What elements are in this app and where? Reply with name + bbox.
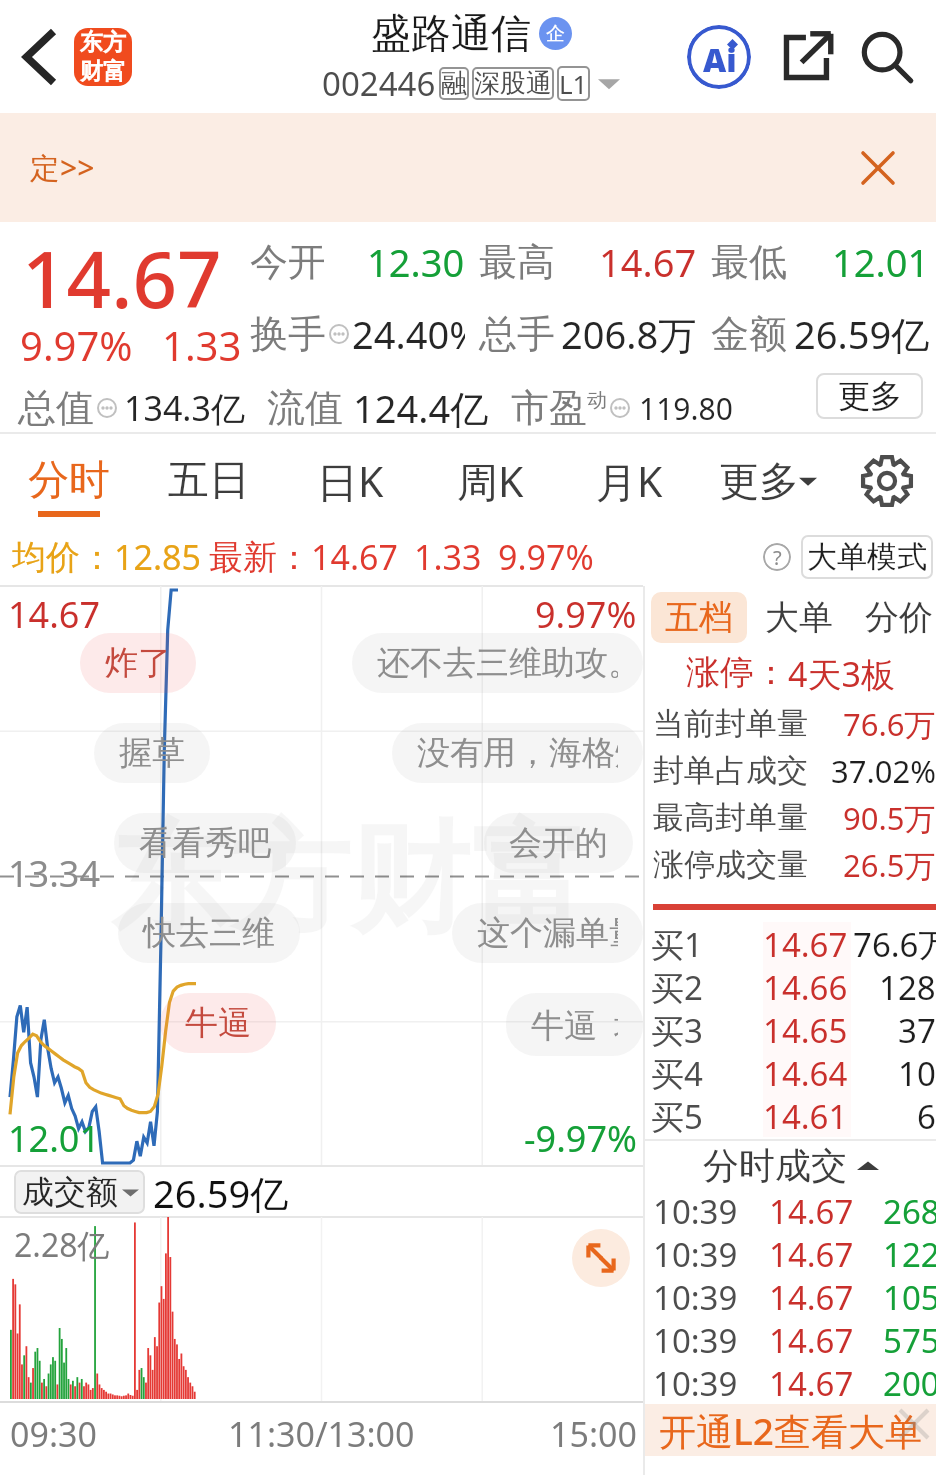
button[interactable]: 月K — [560, 434, 698, 527]
staticText: 定>> — [30, 147, 95, 188]
button[interactable]: Share — [772, 22, 842, 92]
button[interactable]: 10:39 — [645, 1318, 936, 1361]
button[interactable]: 10:39 — [645, 1189, 936, 1232]
button[interactable]: 买2 — [645, 965, 936, 1008]
button[interactable]: 开通L2查看大单 — [645, 1404, 936, 1456]
button[interactable]: 大单模式 — [801, 535, 933, 579]
staticText: 牛逼 地产 — [531, 1002, 618, 1047]
staticText: 买2 — [651, 965, 703, 1008]
staticText: 12.01 — [832, 236, 930, 288]
staticText: 124.4亿 — [353, 382, 489, 434]
staticText: 206.8万 — [561, 308, 697, 360]
button[interactable]: 买1 — [645, 922, 936, 965]
staticText: 14.67 — [769, 1361, 854, 1404]
staticText: 牛逼 — [185, 1002, 251, 1044]
staticText: 融 — [441, 67, 467, 100]
staticText: 14.67 — [769, 1232, 854, 1275]
staticText: 10:39 — [653, 1232, 738, 1275]
staticText: 总手 — [479, 310, 555, 358]
staticText: 575 — [883, 1318, 936, 1361]
button[interactable]: Fullscreen chart — [572, 1229, 630, 1287]
staticText: 6 — [917, 1094, 936, 1137]
staticText: 90.5万 — [843, 797, 936, 839]
button[interactable]: 周K — [420, 434, 560, 527]
staticText: 看看秀吧 — [139, 822, 271, 864]
staticText: 14.67 — [769, 1275, 854, 1318]
button[interactable]: Back — [6, 25, 70, 89]
staticText: 12.01 — [8, 1114, 101, 1163]
staticText: 14.67 — [769, 1189, 854, 1232]
staticText: 9.97% — [20, 318, 133, 372]
button[interactable]: Search — [852, 22, 922, 92]
button[interactable]: 分时 — [0, 434, 138, 527]
staticText: 会开的 — [509, 822, 608, 864]
staticText: 105 — [883, 1275, 936, 1318]
staticText: 76.6万 — [843, 703, 936, 745]
staticText: 今开 — [250, 238, 326, 286]
button[interactable]: Chart settings — [838, 434, 936, 527]
staticText: 14.67 — [763, 922, 848, 965]
staticText: 还不去三维助攻。在 — [377, 642, 618, 684]
staticText: 10 — [898, 1051, 936, 1094]
staticText: 封单占成交 — [653, 751, 808, 790]
staticText: 12.30 — [367, 236, 465, 288]
button[interactable]: East Money — [74, 28, 132, 86]
staticText: Ai — [703, 38, 737, 82]
staticText: 134.3亿 — [124, 385, 245, 431]
staticText: 大单 — [765, 596, 833, 639]
button[interactable]: 分价 — [861, 592, 936, 643]
staticText: 五档 — [665, 596, 733, 639]
staticText: 炸了 — [105, 642, 171, 684]
button[interactable]: Dismiss — [896, 1406, 932, 1442]
staticText: 26.5万 — [843, 844, 936, 886]
staticText: 分时成交 — [703, 1143, 847, 1188]
staticText: 37 — [898, 1008, 936, 1051]
staticText: 买3 — [651, 1008, 703, 1051]
staticText: 买4 — [651, 1051, 703, 1094]
button[interactable]: 更多 — [698, 434, 838, 527]
staticText: 09:30 — [10, 1411, 97, 1457]
staticText: 分价 — [865, 596, 932, 639]
button[interactable]: 更多 — [816, 373, 923, 419]
staticText: 76.6万 — [853, 922, 936, 965]
staticText: 五日 — [168, 455, 250, 507]
staticText: 13.34 — [8, 849, 101, 898]
staticText: 9.97% — [498, 534, 594, 580]
button[interactable]: 五日 — [138, 434, 280, 527]
button[interactable]: 日K — [280, 434, 420, 527]
staticText: L1 — [559, 66, 588, 101]
button[interactable]: 五档 — [651, 592, 747, 643]
staticText: 1.33 — [414, 534, 482, 580]
button[interactable]: 涨停： — [686, 651, 895, 697]
button[interactable]: 买5 — [645, 1094, 936, 1137]
staticText: 119.80 — [639, 388, 733, 429]
button[interactable]: 10:39 — [645, 1361, 936, 1404]
staticText: 月K — [596, 453, 663, 509]
staticText: 10:39 — [653, 1275, 738, 1318]
staticText: 最高封单量 — [653, 798, 808, 837]
staticText: 东方 — [80, 28, 126, 57]
staticText: 均价： — [12, 536, 114, 579]
staticText: 市盈 — [511, 384, 587, 432]
button[interactable]: 大单 — [761, 592, 837, 643]
staticText: 200 — [883, 1361, 936, 1404]
staticText: 10:39 — [653, 1361, 738, 1404]
staticText: 更多 — [838, 376, 902, 416]
button[interactable]: AI assistant — [680, 18, 758, 96]
button[interactable]: 10:39 — [645, 1275, 936, 1318]
staticText: 大单模式 — [807, 538, 927, 576]
staticText: 金额 — [711, 310, 787, 358]
staticText: 14.64 — [763, 1051, 848, 1094]
button[interactable]: 买4 — [645, 1051, 936, 1094]
staticText: 开通L2查看大单 — [659, 1405, 922, 1456]
button[interactable]: 成交额 — [14, 1170, 145, 1214]
button[interactable]: 分时成交 — [703, 1143, 879, 1188]
staticText: 买1 — [651, 922, 703, 965]
button[interactable]: 买3 — [645, 1008, 936, 1051]
button[interactable]: Close banner — [846, 136, 910, 200]
button[interactable]: Help — [763, 543, 791, 571]
staticText: 10:39 — [653, 1189, 738, 1232]
button[interactable]: 10:39 — [645, 1232, 936, 1275]
staticText: ? — [773, 544, 782, 571]
staticText: 14.67 — [311, 534, 398, 580]
